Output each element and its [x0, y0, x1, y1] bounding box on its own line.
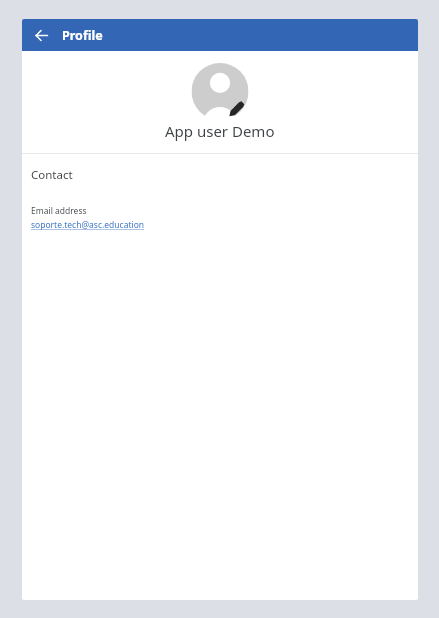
- staticText: Contact: [31, 167, 73, 183]
- staticText: soporte.tech@asc.education: [31, 219, 145, 231]
- button[interactable]: Back: [30, 24, 52, 46]
- staticText: Profile: [62, 27, 103, 44]
- staticText: Email address: [31, 205, 87, 217]
- button[interactable]: Edit profile picture: [180, 63, 260, 121]
- button[interactable]: soporte.tech@asc.education: [31, 219, 145, 231]
- staticText: App user Demo: [165, 121, 275, 141]
